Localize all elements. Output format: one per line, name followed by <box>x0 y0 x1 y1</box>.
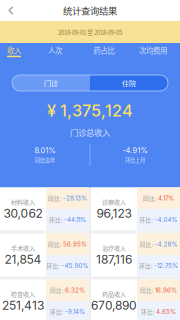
staticText: 人次 <box>48 45 62 56</box>
button[interactable]: 手术收入 <box>0 233 89 276</box>
staticText: 4.65% <box>156 308 176 315</box>
staticText: 环比: <box>139 262 153 270</box>
staticText: -12.75% <box>154 262 178 269</box>
staticText: 环比: <box>139 216 153 224</box>
staticText: 同比: <box>143 194 157 202</box>
staticText: 统计查询结果 <box>63 4 117 17</box>
button[interactable]: 次均费用 <box>126 42 180 60</box>
staticText: 56.95% <box>63 240 87 248</box>
staticText: 2018-09-01 至 2018-09-05 <box>58 28 122 36</box>
staticText: 治疗收入 <box>102 243 126 252</box>
staticText: 21,854 <box>4 252 41 267</box>
staticText: 96,123 <box>96 206 131 221</box>
staticText: 251,413 <box>2 298 44 313</box>
staticText: 6.32% <box>65 286 85 294</box>
staticText: -28.13% <box>63 194 87 202</box>
staticText: 环比: <box>49 216 63 224</box>
staticText: 同比去年 <box>35 156 55 164</box>
staticText: 16.96% <box>155 286 177 294</box>
staticText: 同比: <box>50 286 64 294</box>
staticText: 诊察收入 <box>102 197 126 206</box>
staticText: 环比: <box>50 308 64 316</box>
staticText: 187,116 <box>96 252 132 267</box>
staticText: 同比: <box>139 240 153 248</box>
staticText: ¥ 1,375,124 <box>47 101 133 120</box>
staticText: 4.17% <box>158 194 174 202</box>
button[interactable]: 诊察收入 <box>91 187 180 230</box>
staticText: -4.04% <box>154 216 177 223</box>
button[interactable]: 收入 <box>0 42 28 60</box>
staticText: 环比: <box>46 262 60 270</box>
staticText: -4.28% <box>154 240 177 248</box>
staticText: -9.14% <box>65 308 85 315</box>
staticText: 8.01% <box>34 146 55 155</box>
staticText: 检查收入 <box>11 289 35 298</box>
button[interactable]: 药品收入 <box>91 279 180 320</box>
button[interactable]: 材料收入 <box>0 187 89 230</box>
button[interactable]: 人次 <box>28 42 82 60</box>
staticText: 同比: <box>140 286 154 294</box>
button[interactable]: 治疗收入 <box>91 233 180 276</box>
staticText: 同比: <box>48 194 62 202</box>
staticText: 门诊总收入 <box>70 126 110 138</box>
staticText: 同比: <box>48 240 62 248</box>
staticText: -4.91% <box>122 146 147 155</box>
staticText: 环比: <box>141 308 155 316</box>
staticText: -45.90% <box>61 262 88 269</box>
staticText: 环比上月 <box>125 156 145 164</box>
staticText: 收入 <box>7 45 21 56</box>
staticText: 门诊 <box>44 78 58 88</box>
staticText: 次均费用 <box>139 45 167 56</box>
staticText: 药占比 <box>93 45 114 56</box>
staticText: 药品收入 <box>102 289 126 298</box>
staticText: 手术收入 <box>11 243 35 252</box>
staticText: 材料收入 <box>11 197 35 206</box>
staticText: 住院 <box>122 78 136 88</box>
button[interactable]: Back <box>0 0 22 21</box>
staticText: -44.11% <box>64 216 86 223</box>
button[interactable]: 门诊 <box>12 75 90 91</box>
button[interactable]: 检查收入 <box>0 279 89 320</box>
button[interactable]: 住院 <box>90 75 168 91</box>
staticText: 670,890 <box>91 298 137 313</box>
button[interactable]: 药占比 <box>82 42 126 60</box>
staticText: 30,062 <box>3 206 42 221</box>
